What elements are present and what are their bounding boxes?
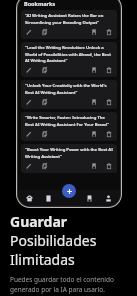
staticText: Bookmarks	[24, 0, 56, 7]
staticText: "Unlock Your Creativity with the World's…	[25, 83, 113, 95]
button[interactable]: Delete	[105, 28, 113, 36]
staticText: "Boost Your Writing Power with the Best …	[25, 147, 113, 159]
button[interactable]: Copy	[41, 28, 49, 36]
staticText: Ilimitadas	[10, 250, 75, 269]
button[interactable]: Bookmark	[90, 66, 98, 74]
staticText: "Lead the Writing Revolution: Unlock a W…	[25, 45, 113, 63]
button[interactable]: Edit	[25, 66, 33, 74]
button[interactable]: Copy	[41, 66, 49, 74]
staticText: Posibilidades	[10, 231, 97, 250]
button[interactable]: Copy	[41, 162, 49, 170]
staticText: "AI Writing Assistant Raises the Bar on …	[25, 13, 113, 25]
button[interactable]: "AI Writing Assistant Raises the Bar on …	[21, 10, 117, 39]
button[interactable]: Delete	[105, 130, 113, 138]
button[interactable]: Copy	[41, 98, 49, 106]
button[interactable]: Edit	[25, 130, 33, 138]
staticText: Puedes guardar todo el contenido generad…	[10, 275, 114, 294]
button[interactable]: Copy	[41, 130, 49, 138]
button[interactable]: "Write Smarter, Faster: Introducing The …	[21, 112, 117, 141]
button[interactable]: Bookmark	[90, 162, 98, 170]
staticText: Guardar	[10, 212, 68, 231]
button[interactable]: Edit	[25, 98, 33, 106]
button[interactable]: "Unlock Your Creativity with the World's…	[21, 80, 117, 109]
button[interactable]: Delete	[105, 66, 113, 74]
button[interactable]: Bookmark	[90, 130, 98, 138]
button[interactable]: Bookmarks	[84, 193, 95, 204]
button[interactable]: Edit	[25, 28, 33, 36]
button[interactable]: "Boost Your Writing Power with the Best …	[21, 144, 117, 173]
button[interactable]: Home	[24, 193, 35, 204]
button[interactable]: Bookmark	[90, 28, 98, 36]
button[interactable]: Edit	[25, 162, 33, 170]
button[interactable]: Delete	[105, 98, 113, 106]
button[interactable]: Bookmark	[90, 98, 98, 106]
button[interactable]: Delete	[105, 162, 113, 170]
button[interactable]: "Lead the Writing Revolution: Unlock a W…	[21, 42, 117, 77]
button[interactable]: Documents	[43, 193, 54, 204]
staticText: "Write Smarter, Faster: Introducing The …	[25, 115, 113, 127]
button[interactable]: Add	[62, 184, 76, 198]
button[interactable]: Profile	[103, 193, 114, 204]
